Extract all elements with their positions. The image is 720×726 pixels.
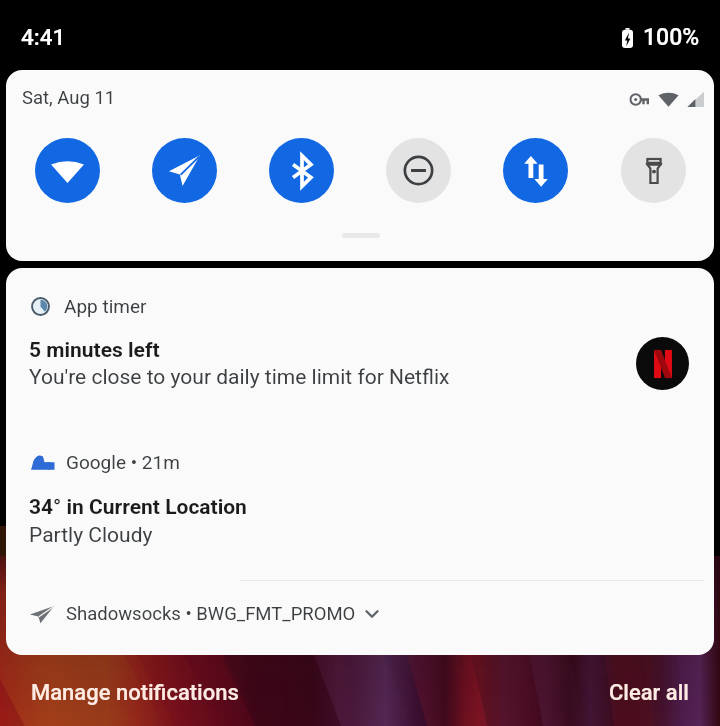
staticText: Google • 21m xyxy=(66,451,180,473)
button[interactable]: Do Not Disturb xyxy=(377,129,459,211)
staticText: Sat, Aug 11 xyxy=(22,87,116,109)
staticText: Partly Cloudy xyxy=(29,523,153,548)
button[interactable]: Internet xyxy=(143,129,225,211)
staticText: Clear all xyxy=(609,680,689,706)
staticText: 100% xyxy=(643,24,700,51)
staticText: Manage notifications xyxy=(31,680,239,706)
button[interactable]: Mobile data xyxy=(494,129,576,211)
button[interactable]: Google • 21m xyxy=(6,434,714,573)
staticText: 4:41 xyxy=(21,24,66,50)
button[interactable]: Shadowsocks • BWG_FMT_PROMO xyxy=(6,584,714,644)
button[interactable]: Flashlight xyxy=(612,129,694,211)
staticText: Shadowsocks • BWG_FMT_PROMO xyxy=(66,603,356,625)
staticText: You're close to your daily time limit fo… xyxy=(29,365,450,390)
staticText: 5 minutes left xyxy=(29,338,160,363)
button[interactable]: Bluetooth xyxy=(260,129,342,211)
button[interactable]: Clear all xyxy=(597,672,701,714)
staticText: App timer xyxy=(64,295,147,317)
button[interactable]: App timer xyxy=(6,268,714,434)
button[interactable]: Manage notifications xyxy=(19,672,251,714)
button[interactable]: Wi-Fi xyxy=(26,129,108,211)
staticText: 34° in Current Location xyxy=(29,495,247,520)
